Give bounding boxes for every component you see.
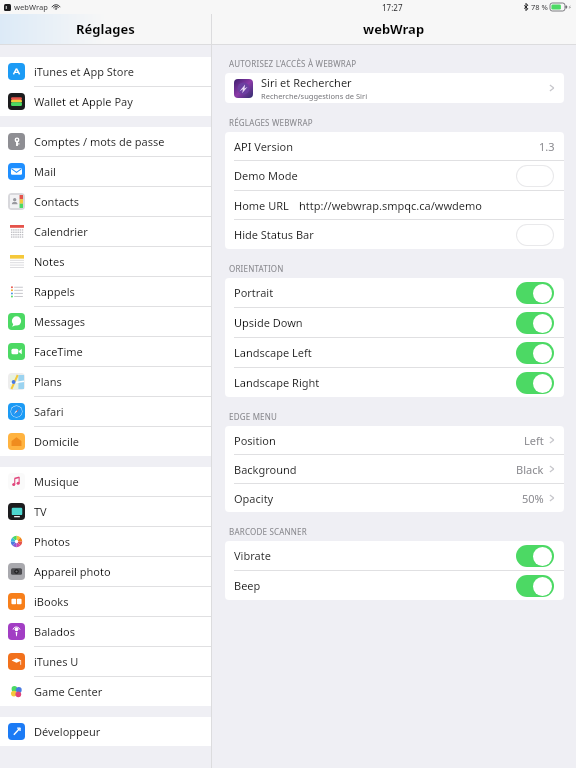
button[interactable]: Portrait bbox=[225, 278, 564, 307]
button[interactable]: Développeur bbox=[0, 717, 211, 746]
staticText: Messages bbox=[34, 314, 86, 329]
button[interactable]: Vibrate bbox=[516, 545, 554, 567]
button[interactable]: Plans bbox=[0, 367, 211, 396]
other: Open bbox=[549, 83, 555, 93]
button[interactable]: iTunes et App Store bbox=[0, 57, 211, 86]
button[interactable]: Wallet et Apple Pay bbox=[0, 87, 211, 116]
staticText: BARCODE SCANNER bbox=[229, 526, 307, 537]
staticText: Portrait bbox=[234, 285, 274, 300]
staticText: TV bbox=[34, 504, 47, 519]
button[interactable]: Position bbox=[225, 426, 564, 454]
staticText: Recherche/suggestions de Siri bbox=[261, 91, 368, 101]
staticText: Game Center bbox=[34, 684, 103, 699]
button[interactable]: Photos bbox=[0, 527, 211, 556]
button[interactable]: TV bbox=[0, 497, 211, 526]
button[interactable]: Messages bbox=[0, 307, 211, 336]
button[interactable]: Landscape Left bbox=[225, 338, 564, 367]
staticText: AUTORISEZ L'ACCÈS À WEBWRAP bbox=[229, 58, 357, 69]
button[interactable]: Demo Mode bbox=[225, 161, 564, 190]
button[interactable]: Home URL bbox=[225, 191, 564, 219]
button[interactable]: Siri et Rechercher bbox=[225, 73, 564, 103]
button[interactable]: Landscape Left bbox=[516, 342, 554, 364]
staticText: ORIENTATION bbox=[229, 263, 284, 274]
staticText: iTunes et App Store bbox=[34, 64, 134, 79]
button[interactable]: Upside Down bbox=[516, 312, 554, 334]
button[interactable]: Demo Mode bbox=[516, 165, 554, 187]
button[interactable]: Comptes / mots de passe bbox=[0, 127, 211, 156]
button[interactable]: Notes bbox=[0, 247, 211, 276]
staticText: Background bbox=[234, 462, 297, 477]
button[interactable]: Vibrate bbox=[225, 541, 564, 570]
other: Open bbox=[549, 435, 555, 445]
button[interactable]: Beep bbox=[516, 575, 554, 597]
button[interactable]: Hide Status Bar bbox=[516, 224, 554, 246]
staticText: Left bbox=[524, 433, 544, 448]
staticText: iBooks bbox=[34, 594, 69, 609]
staticText: Vibrate bbox=[234, 548, 271, 563]
staticText: Balados bbox=[34, 624, 76, 639]
staticText: 1.3 bbox=[539, 139, 555, 154]
staticText: 17:27 bbox=[382, 2, 403, 13]
staticText: Notes bbox=[34, 254, 65, 269]
staticText: Musique bbox=[34, 474, 79, 489]
staticText: webWrap bbox=[14, 2, 48, 12]
staticText: Safari bbox=[34, 404, 64, 419]
button[interactable]: FaceTime bbox=[0, 337, 211, 366]
button[interactable]: Portrait bbox=[516, 282, 554, 304]
button[interactable]: Calendrier bbox=[0, 217, 211, 246]
staticText: Appareil photo bbox=[34, 564, 111, 579]
button[interactable]: Beep bbox=[225, 571, 564, 600]
staticText: Mail bbox=[34, 164, 56, 179]
staticText: Réglages bbox=[76, 20, 135, 38]
staticText: http://webwrap.smpqc.ca/wwdemo bbox=[299, 198, 482, 213]
button[interactable]: Balados bbox=[0, 617, 211, 646]
staticText: RÉGLAGES WEBWRAP bbox=[229, 117, 313, 128]
button[interactable]: Domicile bbox=[0, 427, 211, 456]
button[interactable]: Hide Status Bar bbox=[225, 220, 564, 249]
staticText: EDGE MENU bbox=[229, 411, 278, 422]
staticText: Photos bbox=[34, 534, 71, 549]
other: Open bbox=[549, 493, 555, 503]
staticText: FaceTime bbox=[34, 344, 83, 359]
button[interactable]: iBooks bbox=[0, 587, 211, 616]
staticText: Développeur bbox=[34, 724, 101, 739]
button[interactable]: Contacts bbox=[0, 187, 211, 216]
button[interactable]: Musique bbox=[0, 467, 211, 496]
staticText: Siri et Rechercher bbox=[261, 75, 352, 90]
staticText: API Version bbox=[234, 139, 293, 154]
staticText: iTunes U bbox=[34, 654, 79, 669]
staticText: Landscape Right bbox=[234, 375, 320, 390]
staticText: Black bbox=[516, 462, 544, 477]
button[interactable]: Upside Down bbox=[225, 308, 564, 337]
staticText: Domicile bbox=[34, 434, 79, 449]
button[interactable]: API Version bbox=[225, 132, 564, 160]
staticText: webWrap bbox=[363, 20, 425, 38]
button[interactable]: Landscape Right bbox=[225, 368, 564, 397]
button[interactable]: Landscape Right bbox=[516, 372, 554, 394]
staticText: Beep bbox=[234, 578, 261, 593]
staticText: Rappels bbox=[34, 284, 75, 299]
staticText: Calendrier bbox=[34, 224, 88, 239]
button[interactable]: iTunes U bbox=[0, 647, 211, 676]
staticText: Position bbox=[234, 433, 276, 448]
staticText: Plans bbox=[34, 374, 62, 389]
staticText: 78 % bbox=[531, 2, 548, 12]
button[interactable]: Appareil photo bbox=[0, 557, 211, 586]
staticText: Contacts bbox=[34, 194, 80, 209]
staticText: Upside Down bbox=[234, 315, 303, 330]
staticText: Opacity bbox=[234, 491, 274, 506]
button[interactable]: Mail bbox=[0, 157, 211, 186]
button[interactable]: Rappels bbox=[0, 277, 211, 306]
staticText: Home URL bbox=[234, 198, 289, 213]
staticText: ⚡ bbox=[568, 4, 572, 10]
staticText: Hide Status Bar bbox=[234, 227, 314, 242]
button[interactable]: Background bbox=[225, 455, 564, 483]
staticText: Wallet et Apple Pay bbox=[34, 94, 133, 109]
button[interactable]: Game Center bbox=[0, 677, 211, 706]
staticText: Demo Mode bbox=[234, 168, 298, 183]
button[interactable]: Opacity bbox=[225, 484, 564, 512]
other: Open bbox=[549, 464, 555, 474]
button[interactable]: Safari bbox=[0, 397, 211, 426]
staticText: 50% bbox=[522, 491, 544, 506]
staticText: Landscape Left bbox=[234, 345, 312, 360]
